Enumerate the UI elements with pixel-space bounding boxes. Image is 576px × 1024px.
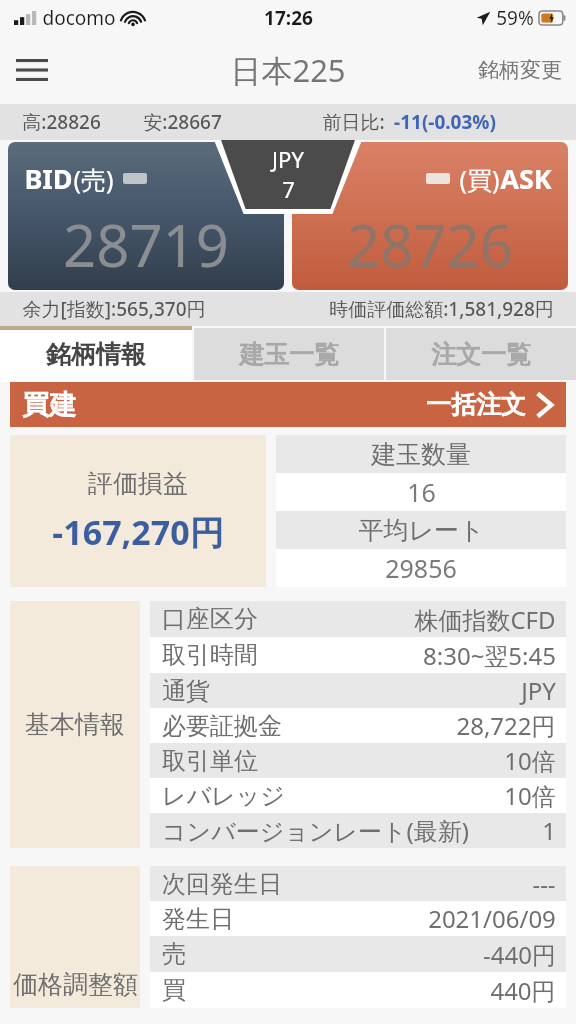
staticText: 10倍 [504, 779, 556, 812]
staticText: -11(-0.03%) [394, 109, 496, 135]
staticText: 時価評価総額:1,581,928円 [329, 296, 554, 322]
staticText: 29856 [385, 551, 457, 585]
staticText: -167,270円 [52, 509, 224, 555]
staticText: 安:28667 [143, 109, 222, 135]
staticText: 口座区分 [162, 604, 258, 634]
staticText: 28726 [347, 205, 513, 284]
staticText: 取引単位 [162, 746, 258, 776]
staticText: 建玉数量 [371, 439, 471, 470]
staticText: 59% [496, 5, 534, 31]
staticText: 余力[指数]:565,370円 [22, 296, 206, 322]
staticText: 日本225 [230, 49, 346, 91]
staticText: 株価指数CFD [414, 603, 556, 636]
staticText: 価格調整額 [13, 969, 138, 1000]
staticText: --- [532, 867, 556, 900]
button[interactable]: 買建 [10, 382, 566, 427]
staticText: 買建 [22, 388, 76, 422]
staticText: ASK [500, 160, 552, 197]
staticText: 高:28826 [22, 109, 101, 135]
staticText: 16 [407, 475, 436, 509]
button[interactable]: 銘柄変更 [478, 57, 562, 83]
staticText: 必要証拠金 [162, 711, 282, 741]
staticText: 売 [162, 939, 186, 969]
button[interactable]: 注文一覧 [386, 328, 576, 380]
button[interactable]: (買) [292, 142, 568, 290]
staticText: 28,722円 [456, 709, 556, 742]
staticText: 基本情報 [25, 709, 125, 740]
staticText: 銘柄変更 [478, 57, 562, 83]
staticText: -440円 [483, 938, 556, 971]
staticText: (売) [73, 162, 114, 196]
button[interactable]: 銘柄情報 [0, 326, 192, 382]
staticText: 17:26 [264, 5, 313, 31]
staticText: 前日比: [322, 109, 385, 135]
staticText: 一括注文 [426, 389, 526, 420]
staticText: 440円 [490, 974, 556, 1007]
staticText: BID [24, 160, 73, 197]
staticText: 8:30~翌5:45 [423, 639, 556, 672]
staticText: docomo [42, 5, 116, 31]
staticText: 2021/06/09 [428, 902, 556, 935]
staticText: 7 [282, 174, 295, 204]
staticText: 評価損益 [88, 468, 188, 499]
button[interactable]: 建玉一覧 [194, 328, 384, 380]
staticText: 平均レート [358, 515, 485, 546]
staticText: 発生日 [162, 904, 234, 934]
staticText: JPY [521, 674, 556, 707]
staticText: 取引時間 [162, 640, 258, 670]
staticText: レバレッジ [162, 781, 285, 811]
staticText: 1 [542, 814, 556, 847]
staticText: 建玉一覧 [239, 339, 339, 370]
staticText: 銘柄情報 [46, 339, 146, 370]
staticText: 注文一覧 [431, 339, 531, 370]
staticText: 通貨 [162, 676, 210, 706]
staticText: 10倍 [504, 744, 556, 777]
button[interactable]: Menu [0, 38, 64, 102]
button[interactable]: BID [8, 142, 284, 290]
staticText: (買) [459, 162, 500, 196]
staticText: JPY [272, 144, 304, 174]
staticText: コンバージョンレート(最新) [162, 814, 469, 847]
staticText: 次回発生日 [162, 869, 282, 899]
staticText: 買 [162, 975, 186, 1005]
staticText: 28719 [63, 205, 229, 284]
